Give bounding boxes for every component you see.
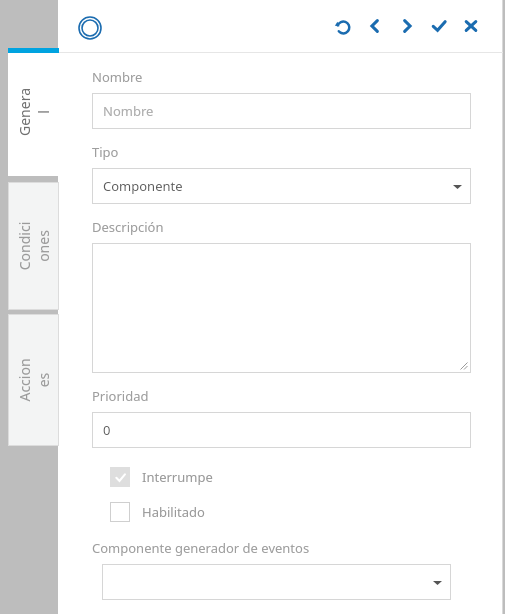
staticText: Componente [103, 177, 183, 195]
button[interactable]: Acciones [8, 314, 59, 446]
button[interactable]: Siguiente [395, 14, 419, 38]
staticText: Condiciones [14, 220, 52, 271]
button[interactable]: Habilitado [110, 499, 205, 525]
button[interactable]: Nombre [92, 93, 471, 129]
button[interactable]: Cerrar [459, 14, 483, 38]
button[interactable] [92, 243, 471, 373]
staticText: Componente generador de eventos [92, 539, 310, 557]
button[interactable]: Anterior [363, 14, 387, 38]
staticText: 0 [103, 421, 111, 439]
staticText: General [14, 86, 52, 137]
button[interactable]: Deshacer [331, 14, 355, 38]
button[interactable]: Componente [92, 168, 471, 204]
staticText: Prioridad [92, 387, 149, 405]
staticText: Interrumpe [142, 468, 213, 486]
staticText: Descripción [92, 218, 164, 236]
staticText: Tipo [92, 143, 119, 161]
button[interactable] [102, 564, 451, 600]
button[interactable]: Estado [76, 14, 104, 42]
button[interactable]: 0 [92, 412, 471, 448]
staticText: Nombre [103, 102, 154, 120]
staticText: Acciones [14, 354, 52, 405]
staticText: Habilitado [142, 503, 205, 521]
button[interactable]: General [8, 48, 59, 176]
button[interactable]: Interrumpe [110, 464, 213, 490]
button[interactable]: Condiciones [8, 182, 59, 310]
staticText: Nombre [92, 68, 143, 86]
button[interactable]: Aceptar [427, 14, 451, 38]
